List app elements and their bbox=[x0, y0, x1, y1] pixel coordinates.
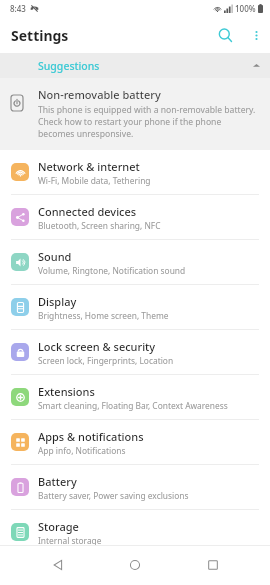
staticText: Lock screen & security bbox=[38, 339, 156, 354]
button[interactable]: Recent apps bbox=[193, 545, 233, 585]
staticText: Smart cleaning, Floating Bar, Context Aw… bbox=[38, 400, 228, 411]
staticText: Internal storage bbox=[38, 535, 102, 545]
staticText: Connected devices bbox=[38, 204, 137, 219]
button[interactable]: Storage bbox=[0, 510, 270, 545]
staticText: Extensions bbox=[38, 384, 95, 399]
staticText: App info, Notifications bbox=[38, 445, 126, 456]
button[interactable]: Battery bbox=[0, 465, 270, 509]
button[interactable]: More options bbox=[242, 21, 270, 49]
staticText: Apps & notifications bbox=[38, 429, 144, 444]
staticText: Screen lock, Fingerprints, Location bbox=[38, 355, 174, 366]
staticText: Sound bbox=[38, 249, 72, 264]
button[interactable]: Search bbox=[208, 18, 242, 52]
staticText: 100% bbox=[235, 3, 256, 14]
staticText: Wi-Fi, Mobile data, Tethering bbox=[38, 175, 151, 186]
staticText: Brightness, Home screen, Theme bbox=[38, 310, 169, 321]
button[interactable]: Network & internet bbox=[0, 150, 270, 194]
staticText: Network & internet bbox=[38, 159, 140, 174]
staticText: Bluetooth, Screen sharing, NFC bbox=[38, 220, 161, 231]
staticText: Battery bbox=[38, 474, 77, 489]
button[interactable]: Lock screen & security bbox=[0, 330, 270, 374]
staticText: Non-removable battery bbox=[38, 87, 161, 102]
button[interactable]: Back bbox=[38, 545, 78, 585]
button[interactable]: Suggestions bbox=[0, 53, 270, 78]
staticText: 8:43 bbox=[10, 3, 26, 14]
button[interactable]: Display bbox=[0, 285, 270, 329]
button[interactable]: Sound bbox=[0, 240, 270, 284]
staticText: Display bbox=[38, 294, 77, 309]
staticText: Volume, Ringtone, Notification sound bbox=[38, 265, 186, 276]
button[interactable]: Non-removable battery bbox=[0, 78, 270, 150]
button[interactable]: Home bbox=[115, 545, 155, 585]
staticText: This phone is equipped with a non-remova… bbox=[38, 104, 256, 140]
staticText: Suggestions bbox=[38, 59, 100, 73]
button[interactable]: Extensions bbox=[0, 375, 270, 419]
button[interactable]: Connected devices bbox=[0, 195, 270, 239]
staticText: Battery saver, Power saving exclusions bbox=[38, 490, 189, 501]
button[interactable]: Apps & notifications bbox=[0, 420, 270, 464]
staticText: Settings bbox=[11, 26, 69, 45]
staticText: Storage bbox=[38, 519, 79, 534]
